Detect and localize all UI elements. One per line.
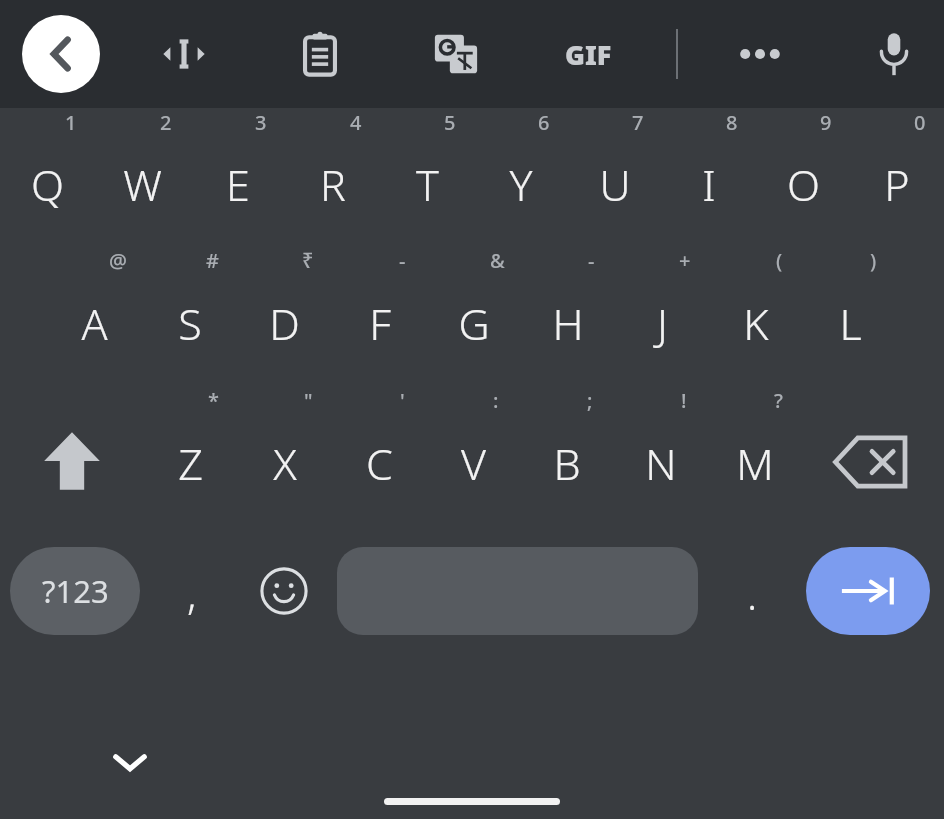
- staticText: *: [208, 387, 219, 414]
- staticText: O: [787, 155, 820, 214]
- staticText: 5: [444, 109, 456, 136]
- button[interactable]: C: [332, 386, 426, 526]
- button[interactable]: Clipboard: [284, 18, 356, 90]
- button[interactable]: Shift: [0, 386, 143, 526]
- button[interactable]: H: [521, 246, 615, 386]
- button[interactable]: Backspace: [802, 386, 944, 526]
- staticText: ,: [187, 565, 197, 622]
- staticText: #: [206, 247, 219, 274]
- button[interactable]: Translate: [420, 18, 492, 90]
- button[interactable]: I: [662, 108, 756, 246]
- staticText: ': [400, 387, 405, 414]
- button[interactable]: X: [238, 386, 332, 526]
- staticText: N: [645, 434, 677, 493]
- staticText: ;: [587, 387, 593, 414]
- button[interactable]: G: [427, 246, 521, 386]
- staticText: M: [736, 434, 774, 493]
- staticText: ₹: [302, 247, 314, 274]
- staticText: C: [366, 434, 393, 493]
- staticText: +: [679, 247, 691, 274]
- button[interactable]: Z: [143, 386, 238, 526]
- button[interactable]: O: [756, 108, 850, 246]
- staticText: 1: [65, 109, 77, 136]
- staticText: -: [399, 247, 406, 274]
- staticText: 6: [538, 109, 550, 136]
- staticText: R: [320, 155, 346, 214]
- staticText: B: [553, 434, 581, 493]
- staticText: Z: [178, 434, 203, 493]
- button[interactable]: E: [190, 108, 285, 246]
- button[interactable]: P: [850, 108, 944, 246]
- staticText: ?: [774, 387, 783, 414]
- button[interactable]: M: [708, 386, 802, 526]
- button[interactable]: W: [95, 108, 190, 246]
- staticText: ": [304, 387, 313, 414]
- button[interactable]: A: [47, 246, 142, 386]
- staticText: GIF: [565, 36, 612, 73]
- button[interactable]: GIF: [552, 18, 624, 90]
- staticText: E: [226, 155, 250, 214]
- button[interactable]: ?123: [10, 547, 140, 635]
- button[interactable]: B: [520, 386, 614, 526]
- staticText: Q: [31, 155, 64, 214]
- button[interactable]: F: [332, 246, 427, 386]
- staticText: S: [178, 294, 202, 353]
- staticText: W: [123, 155, 162, 214]
- button[interactable]: Emoji: [244, 551, 324, 631]
- button[interactable]: Hide keyboard: [92, 724, 168, 800]
- button[interactable]: U: [568, 108, 662, 246]
- staticText: 0: [914, 109, 926, 136]
- staticText: ?123: [42, 570, 109, 612]
- staticText: 3: [255, 109, 267, 136]
- button[interactable]: Voice input: [858, 18, 930, 90]
- button[interactable]: ,: [152, 539, 232, 643]
- staticText: :: [493, 387, 499, 414]
- button[interactable]: V: [426, 386, 520, 526]
- button[interactable]: J: [615, 246, 709, 386]
- button[interactable]: Back: [22, 15, 100, 93]
- staticText: U: [599, 155, 631, 214]
- staticText: !: [681, 387, 687, 414]
- staticText: @: [109, 247, 127, 274]
- staticText: 8: [726, 109, 738, 136]
- button[interactable]: Next: [806, 547, 930, 635]
- button[interactable]: Text editing: [148, 18, 220, 90]
- staticText: A: [81, 294, 108, 353]
- staticText: X: [273, 434, 297, 493]
- button[interactable]: Q: [0, 108, 95, 246]
- button[interactable]: L: [803, 246, 897, 386]
- button[interactable]: T: [380, 108, 474, 246]
- staticText: I: [702, 155, 716, 214]
- staticText: .: [747, 565, 758, 622]
- button[interactable]: Space: [337, 547, 698, 635]
- staticText: 7: [632, 109, 644, 136]
- staticText: J: [657, 294, 668, 353]
- staticText: G: [458, 294, 490, 353]
- staticText: F: [369, 294, 391, 353]
- staticText: &: [490, 247, 505, 274]
- staticText: T: [416, 155, 439, 214]
- staticText: 9: [820, 109, 832, 136]
- staticText: 2: [160, 109, 172, 136]
- staticText: L: [839, 294, 862, 353]
- staticText: P: [884, 155, 910, 214]
- button[interactable]: R: [285, 108, 380, 246]
- button[interactable]: S: [142, 246, 237, 386]
- button[interactable]: Y: [474, 108, 568, 246]
- button[interactable]: .: [712, 539, 792, 643]
- staticText: (: [776, 247, 783, 274]
- button[interactable]: K: [709, 246, 803, 386]
- staticText: Y: [509, 155, 533, 214]
- button[interactable]: More options: [724, 18, 796, 90]
- staticText: K: [743, 294, 769, 353]
- button[interactable]: D: [237, 246, 332, 386]
- staticText: ): [870, 247, 877, 274]
- button[interactable]: N: [614, 386, 708, 526]
- staticText: H: [552, 294, 584, 353]
- staticText: -: [588, 247, 595, 274]
- staticText: 4: [350, 109, 362, 136]
- staticText: D: [269, 294, 300, 353]
- staticText: V: [461, 434, 486, 493]
